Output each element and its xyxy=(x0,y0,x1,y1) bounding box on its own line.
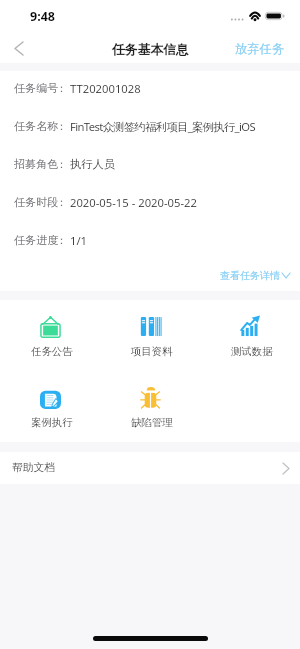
button[interactable]: 帮助文档 xyxy=(0,452,300,484)
staticText: 任务进度 xyxy=(14,233,59,247)
button[interactable]: 查看任务详情 xyxy=(0,261,300,289)
staticText: 查看任务详情 xyxy=(220,269,280,282)
staticText: 缺陷管理 xyxy=(131,416,173,429)
staticText: 任务公告 xyxy=(31,345,73,358)
staticText: 测试数据 xyxy=(231,345,273,358)
button[interactable]: 测试数据 xyxy=(202,309,298,365)
staticText: 案例执行 xyxy=(31,416,73,429)
staticText: ： xyxy=(56,119,67,133)
staticText: ： xyxy=(56,233,67,247)
button[interactable]: 放弃任务 xyxy=(220,33,300,63)
staticText: ： xyxy=(56,157,67,171)
staticText: 任务名称 xyxy=(14,119,59,133)
button[interactable]: 缺陷管理 xyxy=(102,380,198,436)
staticText: ： xyxy=(56,81,67,95)
button[interactable]: 案例执行 xyxy=(2,380,98,436)
staticText: 任务编号 xyxy=(14,81,59,95)
staticText: 帮助文档 xyxy=(12,461,56,475)
staticText: 2020-05-15 - 2020-05-22 xyxy=(70,195,197,210)
staticText: 执行人员 xyxy=(70,157,115,171)
staticText: FinTest众测签约福利项目_案例执行_iOS xyxy=(70,119,255,134)
button[interactable]: Back xyxy=(0,33,38,63)
staticText: 任务基本信息 xyxy=(112,42,189,58)
staticText: 1/1 xyxy=(70,233,88,248)
staticText: 任务时段 xyxy=(14,195,59,209)
staticText: 放弃任务 xyxy=(235,41,285,56)
button[interactable]: 任务公告 xyxy=(2,309,98,365)
button[interactable]: 项目资料 xyxy=(102,309,198,365)
staticText: 9:48 xyxy=(30,8,55,25)
staticText: TT202001028 xyxy=(70,81,141,96)
staticText: 招募角色 xyxy=(14,157,59,171)
staticText: ： xyxy=(56,195,67,209)
staticText: 项目资料 xyxy=(131,345,173,358)
